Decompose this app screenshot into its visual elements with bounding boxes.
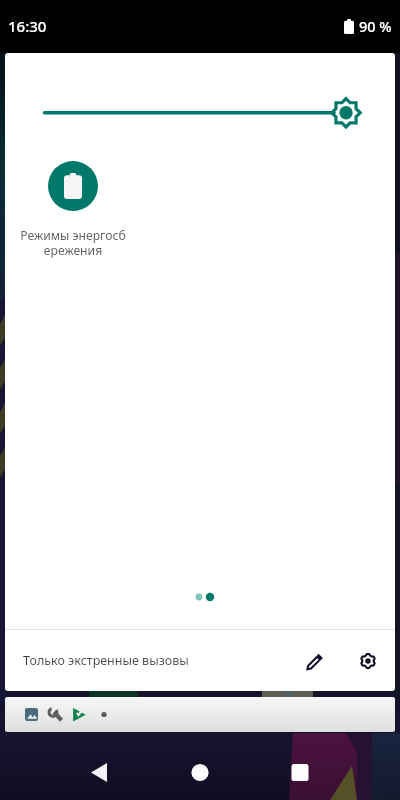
button[interactable]: Edit	[295, 641, 335, 681]
button[interactable]: Settings	[348, 641, 388, 681]
button[interactable]: Recents	[276, 748, 324, 796]
button[interactable]: Back	[75, 748, 123, 796]
staticText: Только экстренные вызовы	[23, 652, 189, 669]
button[interactable]: Home	[176, 748, 224, 796]
button[interactable]: Яркость	[30, 93, 370, 133]
staticText: Режимы энергосб ережения	[16, 227, 130, 258]
staticText: 90 %	[359, 16, 392, 36]
button[interactable]: Режимы энергосбережения	[16, 161, 130, 258]
staticText: 16:30	[8, 16, 47, 36]
button[interactable]	[5, 697, 395, 732]
